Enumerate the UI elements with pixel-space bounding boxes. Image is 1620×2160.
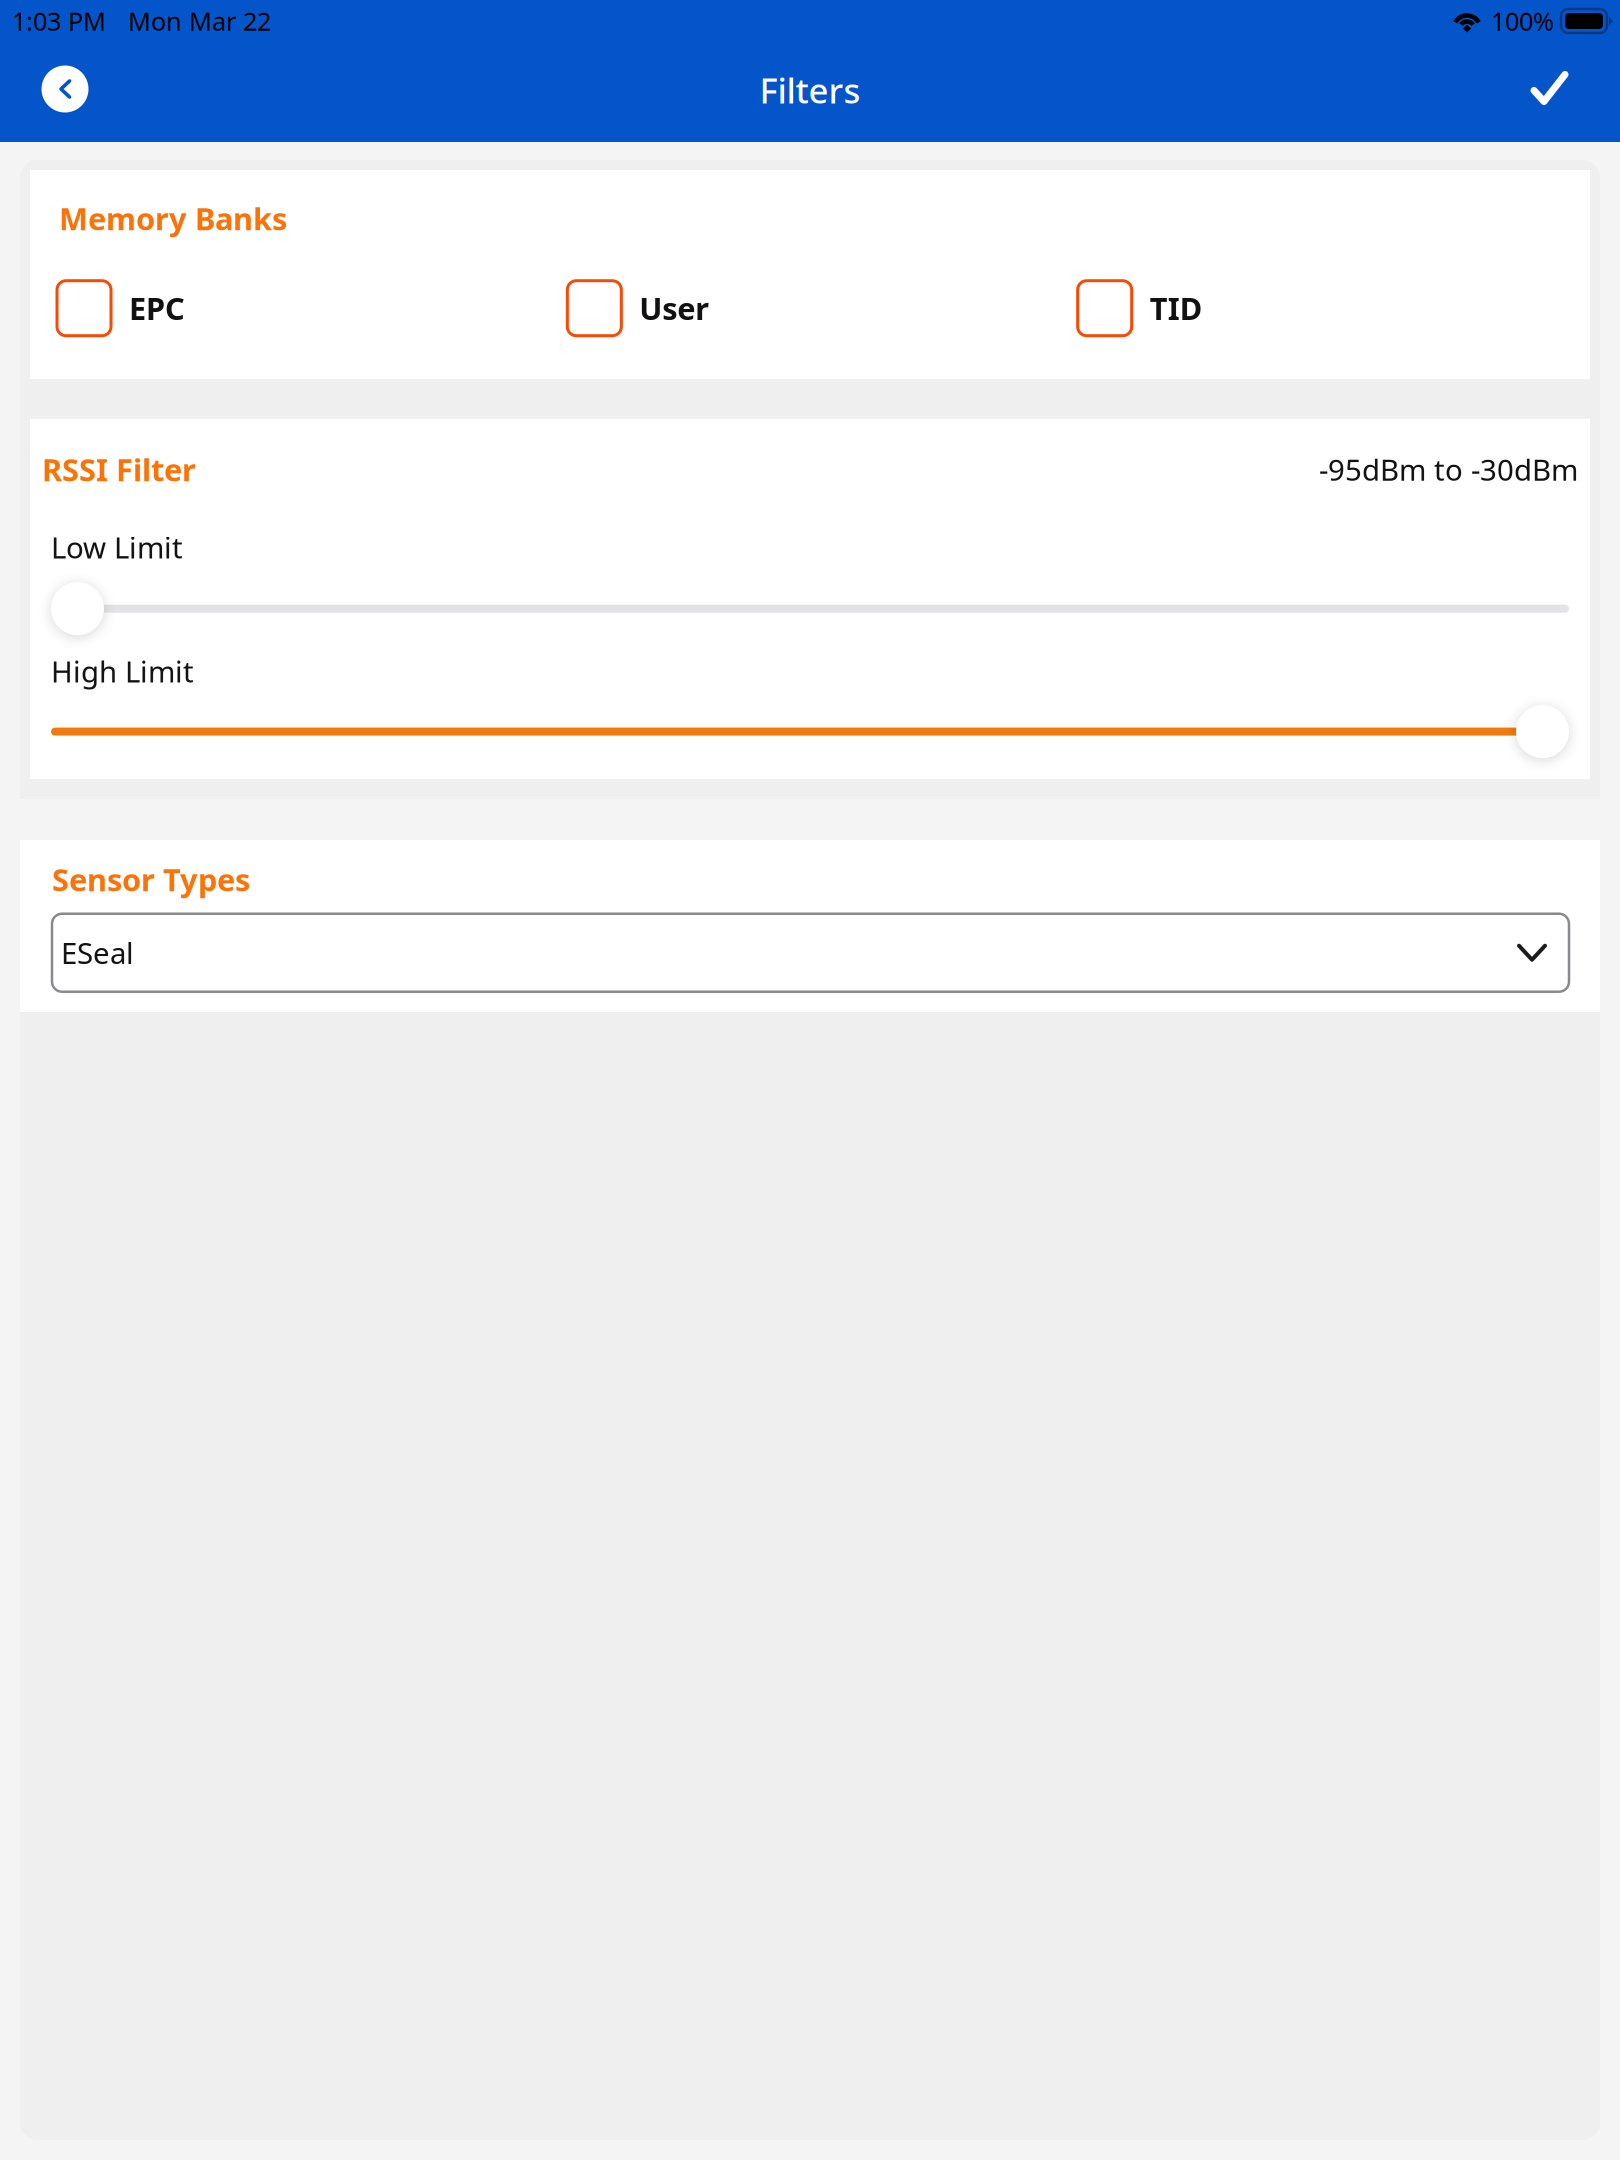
button[interactable]: User [567,281,1078,336]
staticText: 100% [1491,4,1554,38]
button[interactable]: EPC [57,281,567,336]
staticText: ESeal [61,933,134,972]
staticText: User [639,288,709,329]
button[interactable]: Apply filters [1513,50,1597,134]
button[interactable]: ESeal [52,914,1569,992]
staticText: TID [1150,288,1202,329]
staticText: -95dBm to -30dBm [1319,450,1578,489]
staticText: Filters [759,67,860,113]
staticText: Mon Mar 22 [128,4,271,38]
button[interactable]: Back [23,50,107,134]
staticText: 1:03 PM [12,4,106,38]
staticText: Sensor Types [52,859,250,900]
staticText: Low Limit [51,528,183,567]
staticText: Memory Banks [59,198,287,239]
staticText: RSSI Filter [42,449,196,490]
button[interactable]: TID [1078,281,1588,336]
staticText: EPC [129,288,185,329]
staticText: High Limit [51,652,194,691]
